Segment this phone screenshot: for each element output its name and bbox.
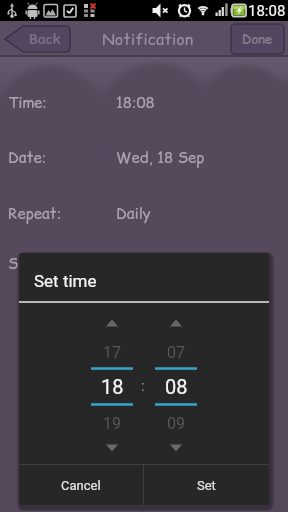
staticText: Repeat:: [8, 203, 62, 224]
staticText: 09: [167, 414, 185, 433]
staticText: Set time: [34, 271, 97, 291]
staticText: Wed, 18 Sep: [116, 147, 205, 168]
staticText: 17: [103, 343, 121, 362]
staticText: Done: [242, 30, 273, 48]
staticText: Time:: [8, 92, 47, 113]
button[interactable]: Cancel: [19, 465, 143, 505]
staticText: Notification: [102, 28, 194, 50]
staticText: Daily: [116, 203, 151, 224]
staticText: Sound:: [8, 253, 56, 274]
staticText: :: [141, 377, 145, 395]
button[interactable]: Set: [144, 465, 269, 505]
staticText: Cancel: [61, 478, 101, 493]
staticText: 08: [165, 375, 188, 398]
staticText: Date:: [8, 147, 47, 168]
button[interactable]: Done: [231, 24, 284, 54]
staticText: 19: [103, 414, 121, 433]
staticText: 18:08: [248, 2, 286, 20]
staticText: Set: [197, 478, 216, 493]
staticText: 18:08: [116, 92, 155, 113]
staticText: Back: [29, 29, 61, 49]
staticText: 18: [101, 375, 124, 398]
staticText: 07: [167, 343, 185, 362]
button[interactable]: Back: [5, 25, 70, 53]
